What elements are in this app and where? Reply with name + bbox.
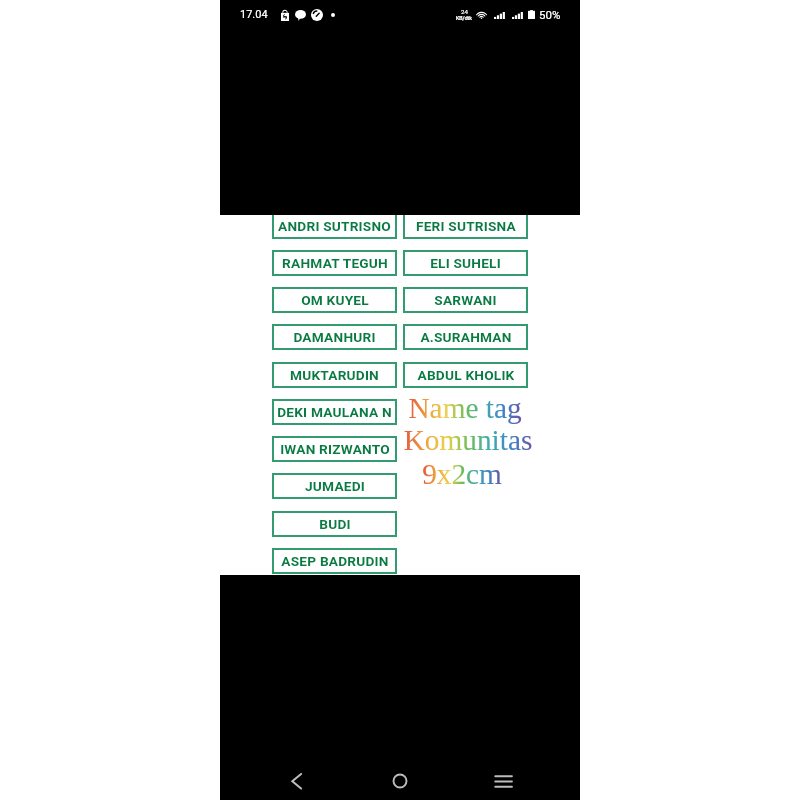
- staticText: ANDRI SUTRISNO: [278, 218, 391, 234]
- staticText: DEKI MAULANA N: [277, 404, 392, 420]
- button[interactable]: OM KUYEL: [272, 287, 397, 313]
- staticText: Name tag: [365, 392, 565, 424]
- staticText: Komunitas: [368, 424, 568, 456]
- button[interactable]: Recent apps: [487, 765, 519, 797]
- button[interactable]: A.SURAHMAN: [403, 324, 528, 350]
- staticText: SARWANI: [434, 292, 497, 308]
- staticText: OM KUYEL: [301, 292, 369, 308]
- button[interactable]: ELI SUHELI: [403, 250, 528, 276]
- staticText: JUMAEDI: [305, 478, 365, 494]
- staticText: DAMANHURI: [293, 329, 376, 345]
- staticText: ASEP BADRUDIN: [281, 553, 389, 569]
- button[interactable]: DEKI MAULANA N: [272, 399, 397, 425]
- button[interactable]: BUDI: [272, 511, 397, 537]
- button[interactable]: IWAN RIZWANTO: [272, 436, 397, 462]
- button[interactable]: ASEP BADRUDIN: [272, 548, 397, 574]
- button[interactable]: MUKTARUDIN: [272, 362, 397, 388]
- staticText: MUKTARUDIN: [290, 367, 379, 383]
- button[interactable]: FERI SUTRISNA: [403, 215, 528, 239]
- staticText: IWAN RIZWANTO: [280, 441, 390, 457]
- button[interactable]: DAMANHURI: [272, 324, 397, 350]
- button[interactable]: SARWANI: [403, 287, 528, 313]
- staticText: RAHMAT TEGUH: [282, 255, 388, 271]
- staticText: 50%: [539, 8, 561, 21]
- button[interactable]: Back: [276, 765, 308, 797]
- staticText: 9x2cm: [362, 458, 562, 490]
- staticText: ELI SUHELI: [430, 255, 501, 271]
- button[interactable]: Home: [384, 765, 416, 797]
- staticText: ABDUL KHOLIK: [417, 367, 515, 383]
- staticText: A.SURAHMAN: [420, 329, 512, 345]
- button[interactable]: ABDUL KHOLIK: [403, 362, 528, 388]
- staticText: 24: [461, 8, 468, 15]
- staticText: 17.04: [240, 8, 268, 21]
- button[interactable]: RAHMAT TEGUH: [272, 250, 397, 276]
- button[interactable]: ANDRI SUTRISNO: [272, 215, 397, 239]
- button[interactable]: JUMAEDI: [272, 473, 397, 499]
- staticText: KB/dtk: [456, 15, 472, 21]
- staticText: FERI SUTRISNA: [416, 218, 516, 234]
- staticText: BUDI: [319, 516, 351, 532]
